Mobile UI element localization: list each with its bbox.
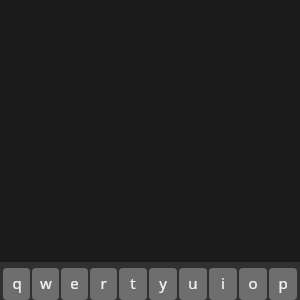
button[interactable]: i: [209, 268, 237, 300]
staticText: p: [278, 273, 288, 293]
staticText: e: [70, 273, 79, 293]
staticText: w: [40, 273, 52, 293]
other: Keyboard: [0, 262, 300, 300]
button[interactable]: p: [269, 268, 297, 300]
button[interactable]: e: [61, 268, 88, 300]
button[interactable]: r: [90, 268, 117, 300]
button[interactable]: q: [3, 268, 30, 300]
staticText: u: [188, 273, 198, 293]
staticText: r: [100, 273, 107, 293]
button[interactable]: y: [149, 268, 177, 300]
staticText: y: [159, 273, 167, 293]
button[interactable]: o: [239, 268, 267, 300]
button[interactable]: u: [179, 268, 207, 300]
staticText: t: [130, 273, 136, 293]
staticText: q: [12, 273, 22, 293]
button[interactable]: t: [119, 268, 147, 300]
staticText: i: [221, 273, 225, 293]
staticText: o: [248, 273, 258, 293]
button[interactable]: w: [32, 268, 59, 300]
